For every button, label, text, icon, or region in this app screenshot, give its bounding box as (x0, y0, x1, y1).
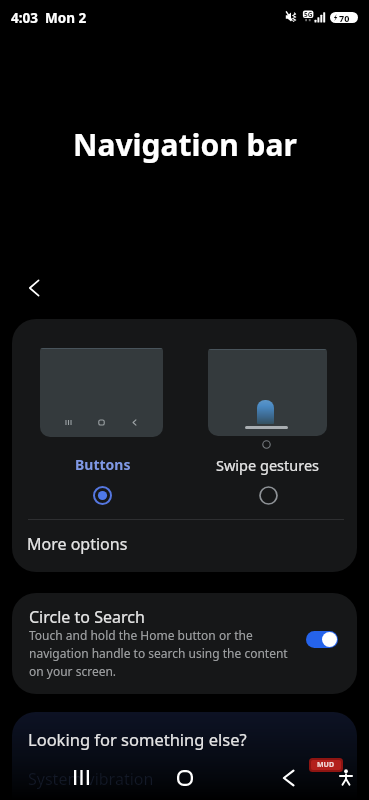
staticText: Touch and hold the Home button or the na… (29, 627, 293, 679)
staticText: MUD (317, 760, 335, 770)
button[interactable]: Back (266, 755, 311, 800)
button[interactable]: Buttons (83, 476, 121, 514)
staticText: 5G (304, 10, 313, 19)
staticText: 70 (339, 12, 350, 24)
button[interactable]: Circle to Search toggle (298, 625, 346, 653)
staticText: Navigation bar (73, 124, 297, 165)
button[interactable]: Buttons preview (40, 348, 163, 437)
button[interactable]: Home (162, 755, 207, 800)
button[interactable]: Looking for something else? (12, 712, 357, 800)
button[interactable]: Navigate up (17, 270, 53, 306)
button[interactable]: Swipe gestures preview (208, 349, 327, 436)
button[interactable]: Circle to Search (12, 593, 357, 694)
staticText: Looking for something else? (28, 728, 247, 750)
button[interactable]: Swipe gestures (249, 476, 287, 514)
staticText: 4:03 Mon 2 (11, 9, 87, 27)
button[interactable]: Accessibility (337, 768, 354, 785)
button[interactable]: More options (12, 520, 357, 572)
staticText: More options (27, 533, 128, 555)
staticText: System vibration (28, 768, 154, 790)
staticText: Buttons (75, 455, 131, 474)
staticText: Swipe gestures (216, 455, 320, 475)
button[interactable]: Recent apps (59, 755, 104, 800)
staticText: Circle to Search (29, 606, 145, 628)
